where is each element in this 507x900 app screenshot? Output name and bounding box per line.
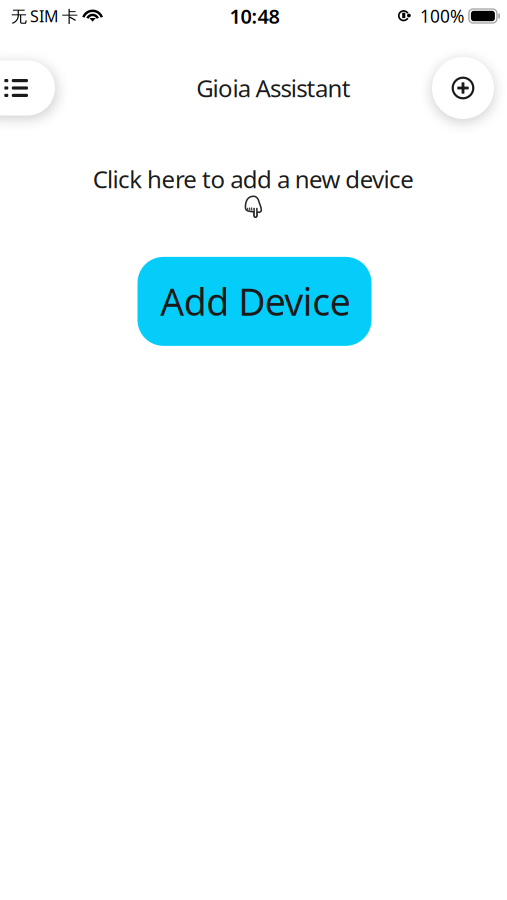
button[interactable]: Menu: [0, 60, 55, 115]
staticText: 10:48: [229, 3, 279, 29]
staticText: 100%: [420, 4, 464, 27]
staticText: Gioia Assistant: [196, 72, 351, 104]
staticText: 无 SIM 卡: [11, 5, 78, 27]
button[interactable]: Add Device: [136, 257, 370, 346]
staticText: Click here to add a new device: [93, 163, 414, 195]
staticText: Add Device: [160, 277, 351, 326]
button[interactable]: Add device: [432, 57, 494, 119]
